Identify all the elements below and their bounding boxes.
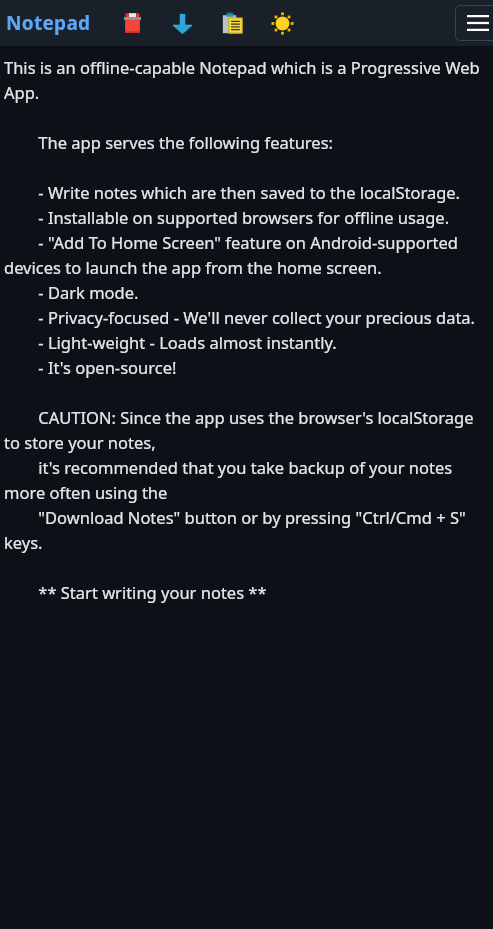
button[interactable]: Copy notes xyxy=(207,0,257,46)
staticText: Notepad xyxy=(6,10,91,36)
button[interactable]: Menu xyxy=(455,5,493,41)
staticText: This is an offline-capable Notepad which… xyxy=(4,56,491,604)
button[interactable]: Notepad xyxy=(5,6,92,40)
button[interactable]: Toggle theme xyxy=(257,0,307,46)
button[interactable]: Delete notes xyxy=(107,0,157,46)
button[interactable]: This is an offline-capable Notepad which… xyxy=(0,46,493,929)
button[interactable]: Download notes xyxy=(157,0,207,46)
